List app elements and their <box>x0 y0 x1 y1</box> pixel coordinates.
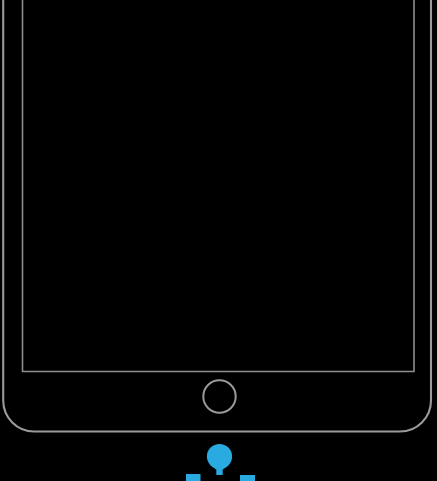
other: Phone device outline with location pin <box>0 0 437 481</box>
